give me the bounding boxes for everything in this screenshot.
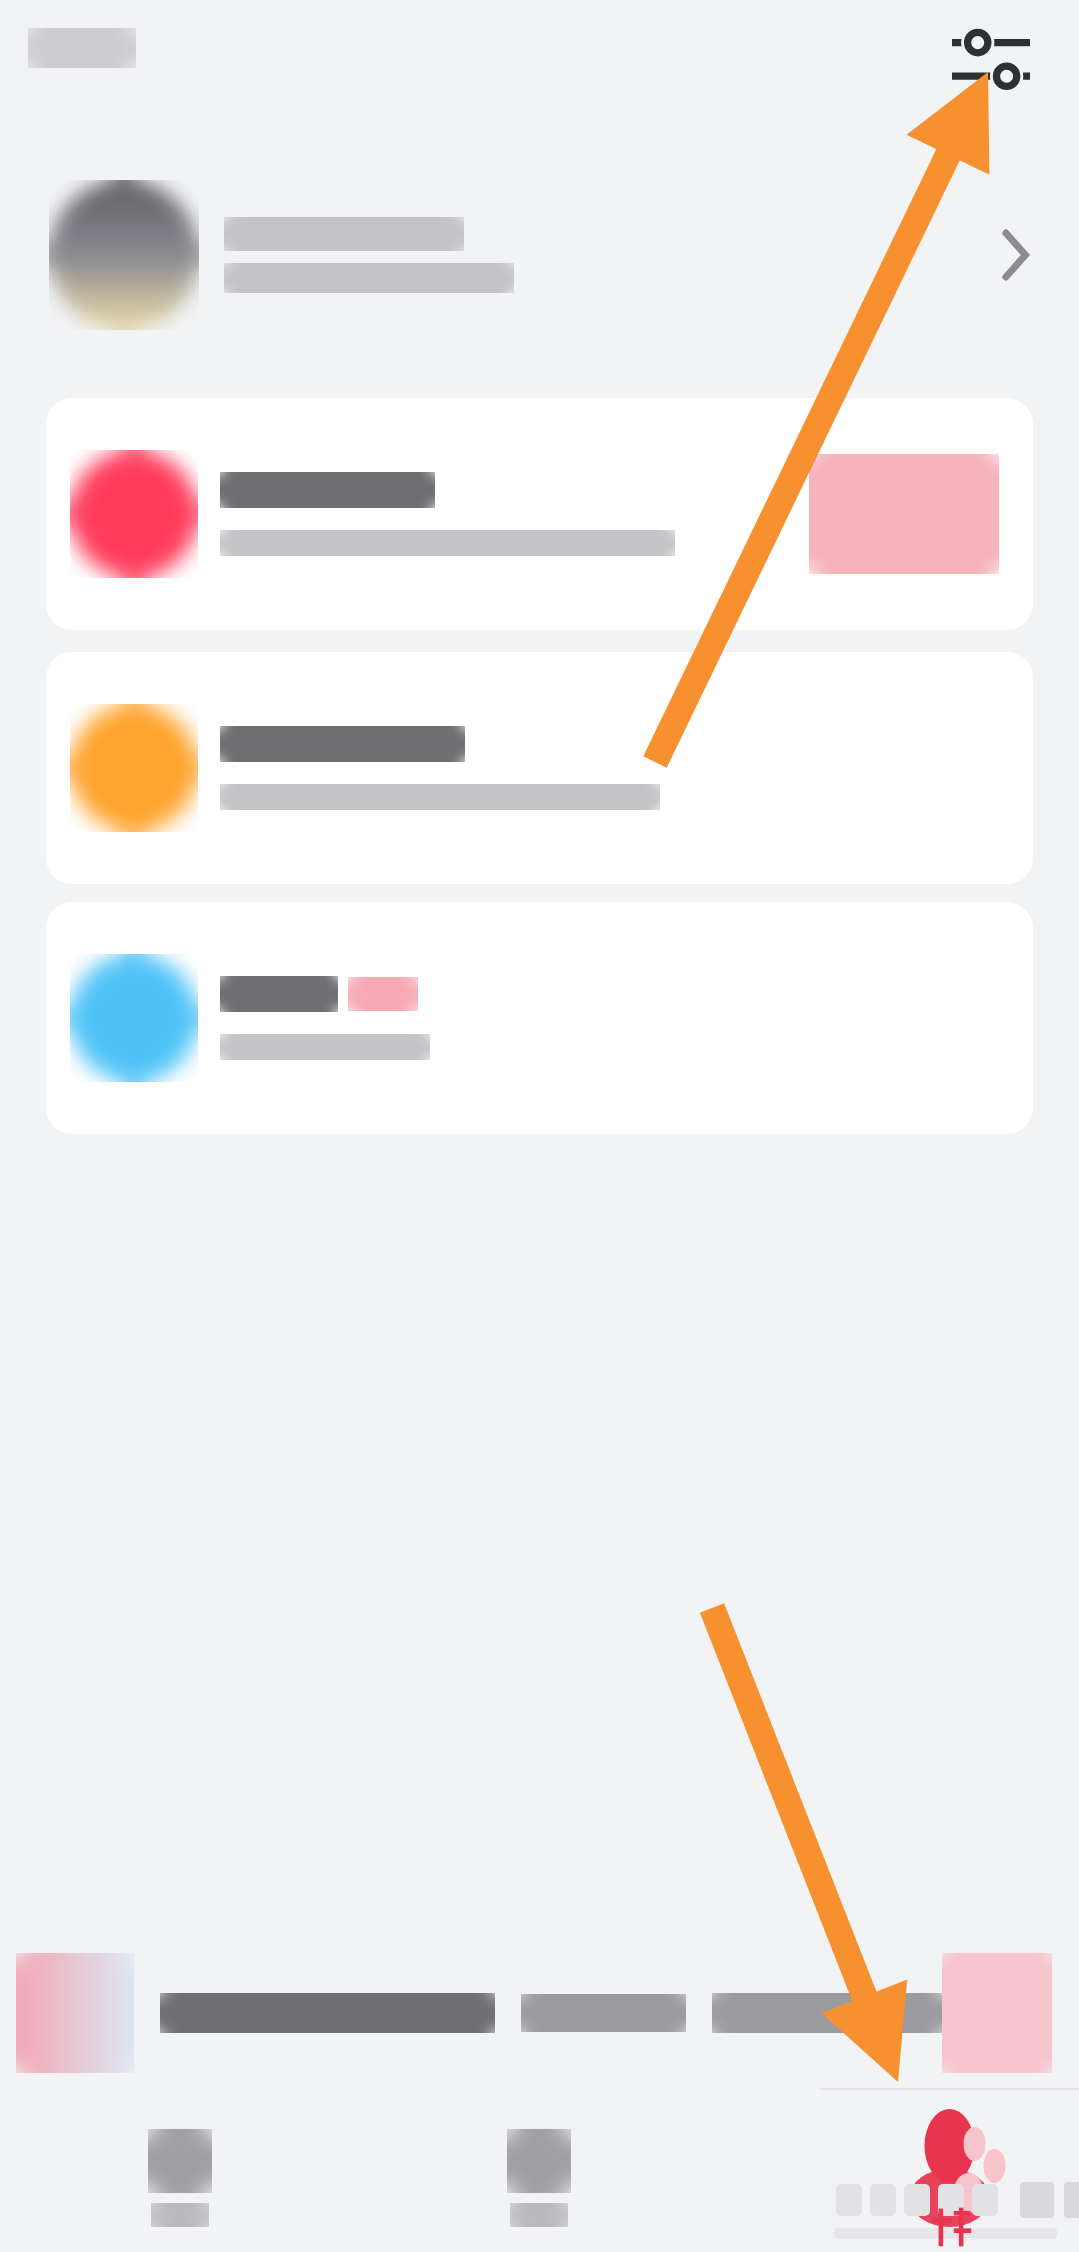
button[interactable]: Filter settings: [932, 8, 1050, 112]
button[interactable]: [46, 902, 1033, 1134]
button[interactable]: [0, 1938, 1079, 2088]
other: Open profile: [975, 215, 1055, 295]
button[interactable]: [46, 652, 1033, 884]
button[interactable]: Open profile: [0, 150, 1079, 360]
button[interactable]: [46, 398, 1033, 630]
button[interactable]: [359, 2104, 719, 2252]
button[interactable]: [0, 2104, 359, 2252]
